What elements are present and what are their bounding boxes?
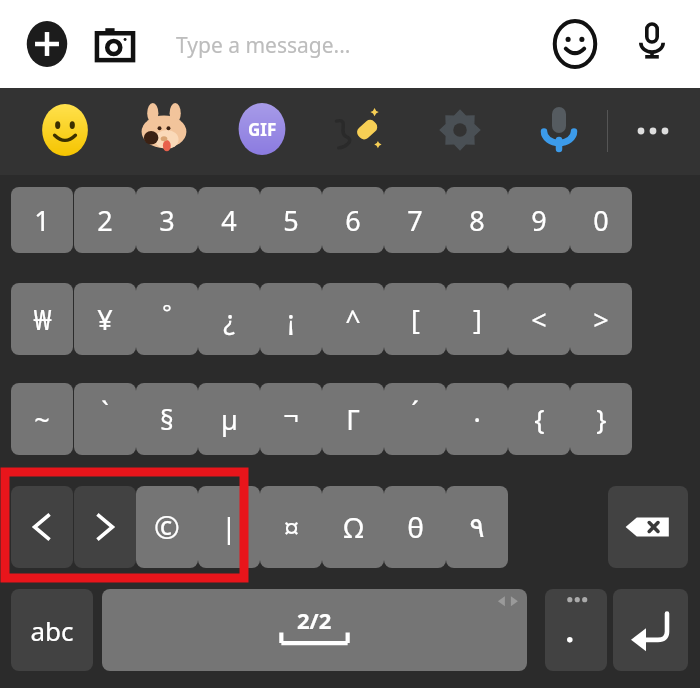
staticText: < <box>531 301 547 338</box>
staticText: § <box>160 401 174 438</box>
staticText: · <box>473 401 481 438</box>
button[interactable]: GIF <box>236 103 288 155</box>
button[interactable]: 9 <box>508 187 570 253</box>
staticText: ۹ <box>469 511 485 544</box>
button[interactable]: More options <box>628 106 678 156</box>
staticText: ¤ <box>283 508 300 546</box>
staticText: 6 <box>345 202 361 239</box>
button[interactable]: θ <box>384 486 446 568</box>
staticText: ` <box>101 393 109 430</box>
staticText: } <box>596 401 607 438</box>
button[interactable]: 4 <box>198 187 260 253</box>
button[interactable]: ¤ <box>260 486 322 568</box>
staticText: 2/2 <box>297 605 332 635</box>
button[interactable]: ₩ <box>11 283 73 355</box>
staticText: 2 <box>97 202 113 239</box>
staticText: © <box>154 506 180 548</box>
button[interactable]: · <box>446 383 508 455</box>
staticText: ~ <box>34 401 50 438</box>
staticText: 3 <box>159 202 175 239</box>
button[interactable]: | <box>198 486 260 568</box>
button[interactable]: ¥ <box>74 283 136 355</box>
button[interactable]: Settings <box>434 104 486 156</box>
staticText: ¥ <box>97 301 113 338</box>
button[interactable]: Backspace <box>608 486 688 568</box>
button[interactable]: Move cursor right <box>74 486 136 568</box>
button[interactable]: ¡ <box>260 283 322 355</box>
button[interactable]: { <box>508 383 570 455</box>
button[interactable]: ~ <box>11 383 73 455</box>
staticText: | <box>221 508 237 546</box>
staticText: ₩ <box>33 301 52 338</box>
button[interactable]: ´ <box>384 383 446 455</box>
staticText: ¬ <box>283 397 299 434</box>
button[interactable]: Add attachment <box>24 21 70 67</box>
staticText: 8 <box>469 202 485 239</box>
button[interactable]: 5 <box>260 187 322 253</box>
button[interactable]: [ <box>384 283 446 355</box>
button[interactable]: Handwriting <box>332 102 388 158</box>
staticText: Γ <box>346 401 360 438</box>
button[interactable]: ¿ <box>198 283 260 355</box>
button[interactable]: Period and symbols <box>545 589 607 671</box>
button[interactable]: 2 <box>74 187 136 253</box>
staticText: { <box>534 401 545 438</box>
button[interactable]: ° <box>136 283 198 355</box>
button[interactable]: } <box>570 383 632 455</box>
staticText: > <box>593 301 609 338</box>
staticText: abc <box>30 613 74 648</box>
staticText: ° <box>162 296 172 326</box>
button[interactable]: ¬ <box>260 383 322 455</box>
button[interactable]: Camera <box>94 24 136 66</box>
staticText: Type a message... <box>176 31 351 60</box>
staticText: ´ <box>411 393 419 430</box>
staticText: 7 <box>407 202 423 239</box>
button[interactable]: ] <box>446 283 508 355</box>
staticText: ^ <box>345 301 361 338</box>
staticText: 1 <box>34 202 50 239</box>
staticText: 5 <box>283 202 299 239</box>
button[interactable]: 8 <box>446 187 508 253</box>
button[interactable]: 3 <box>136 187 198 253</box>
staticText: ¿ <box>223 301 235 338</box>
staticText: 9 <box>531 202 547 239</box>
staticText: 4 <box>221 202 237 239</box>
button[interactable]: abc <box>11 589 93 671</box>
button[interactable]: ۹ <box>446 486 508 568</box>
button[interactable]: ^ <box>322 283 384 355</box>
button[interactable]: Stickers <box>136 102 192 158</box>
staticText: θ <box>407 508 424 546</box>
button[interactable]: 1 <box>11 187 73 253</box>
button[interactable]: Voice typing <box>534 102 584 152</box>
button[interactable]: 7 <box>384 187 446 253</box>
button[interactable]: Move cursor left <box>11 486 73 568</box>
button[interactable]: µ <box>198 383 260 455</box>
button[interactable]: ` <box>74 383 136 455</box>
button[interactable]: Space <box>102 589 527 671</box>
staticText: ¡ <box>287 301 295 338</box>
staticText: µ <box>221 401 238 438</box>
button[interactable]: Voice input <box>632 20 672 60</box>
button[interactable]: Γ <box>322 383 384 455</box>
button[interactable]: © <box>136 486 198 568</box>
button[interactable]: Emoji <box>39 104 91 156</box>
button[interactable]: Enter <box>613 589 688 671</box>
staticText: ] <box>473 301 482 338</box>
button[interactable]: 0 <box>570 187 632 253</box>
button[interactable]: > <box>570 283 632 355</box>
staticText: 0 <box>593 202 609 239</box>
staticText: [ <box>411 301 420 338</box>
button[interactable]: Emoji <box>552 21 598 67</box>
staticText: GIF <box>248 118 277 141</box>
button[interactable]: 6 <box>322 187 384 253</box>
button[interactable]: Ω <box>322 486 384 568</box>
staticText: Ω <box>343 508 364 546</box>
button[interactable]: § <box>136 383 198 455</box>
button[interactable]: < <box>508 283 570 355</box>
